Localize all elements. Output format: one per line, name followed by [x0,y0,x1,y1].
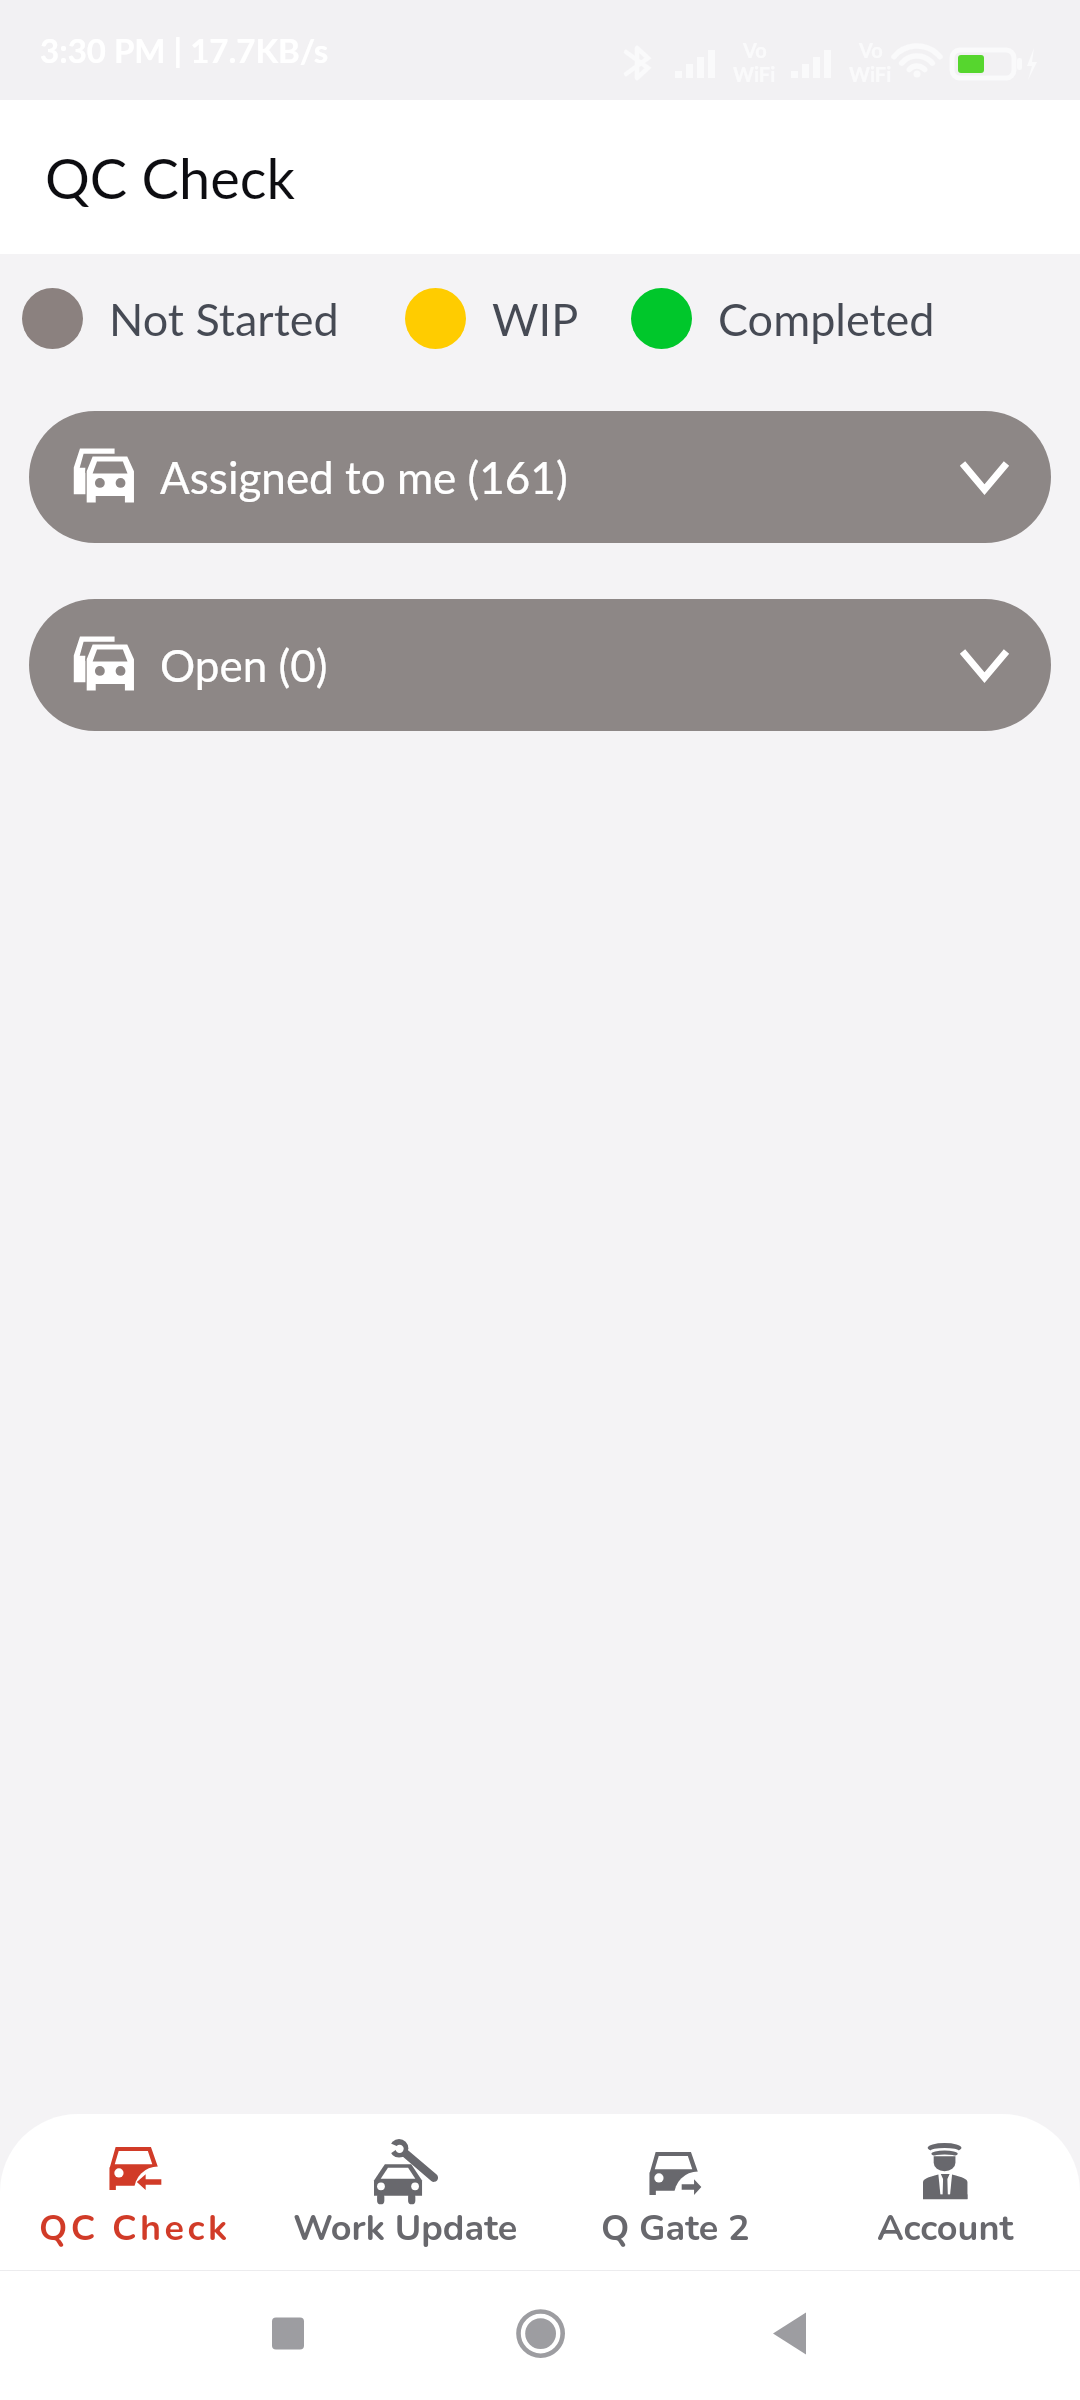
staticText: WiFi [849,62,892,86]
staticText: Account [877,2204,1014,2253]
staticText: Not Started [109,292,339,346]
staticText: Assigned to me (161) [160,451,568,504]
staticText: WiFi [733,62,776,86]
staticText: Vo [743,38,767,62]
staticText: QC Check [39,2204,231,2253]
button[interactable]: Account [810,2114,1080,2271]
staticText: Q Gate 2 [601,2204,750,2253]
staticText: Vo [859,38,883,62]
button[interactable]: Q Gate 2 [540,2114,810,2271]
button[interactable]: Assigned to me (161) [29,411,1051,543]
button[interactable]: Work Update [270,2114,540,2271]
button[interactable]: QC Check [0,2114,270,2271]
staticText: Completed [718,292,935,346]
button[interactable]: Open (0) [29,599,1051,731]
staticText: Work Update [293,2204,518,2253]
staticText: QC Check [45,144,295,211]
staticText: 3:30 PM | 17.7KB/s [40,30,329,70]
staticText: WIP [492,292,579,346]
staticText: Open (0) [160,639,328,692]
